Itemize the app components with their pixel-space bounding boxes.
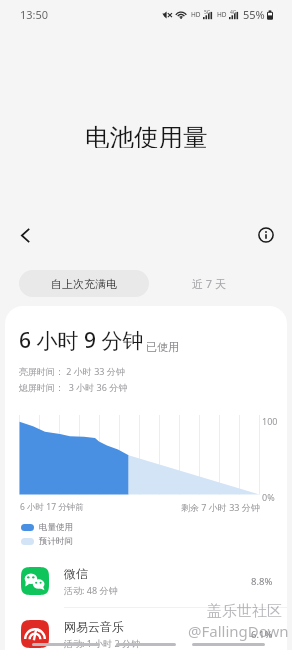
staticText: 自上次充满电 — [51, 277, 117, 291]
staticText: 8.8% — [251, 575, 273, 588]
staticText: 0% — [262, 491, 275, 503]
staticText: 盖乐世社区 — [207, 602, 282, 621]
staticText: 4G — [230, 9, 237, 16]
button[interactable]: 近 7 天 — [149, 270, 269, 297]
button[interactable]: 微信 — [5, 555, 287, 607]
button[interactable]: Back — [7, 217, 43, 253]
staticText: HD — [217, 10, 227, 19]
staticText: 已使用 — [146, 340, 179, 354]
staticText: 活动: 1 小时 2 分钟 — [64, 637, 141, 649]
staticText: @FallingDown — [188, 621, 289, 641]
button[interactable]: 网易云音乐 — [5, 608, 287, 650]
staticText: 5G — [204, 9, 211, 16]
staticText: 100 — [262, 415, 278, 427]
staticText: 活动: 48 分钟 — [64, 584, 118, 596]
staticText: 剩余 7 小时 33 分钟 — [181, 501, 260, 513]
staticText: 熄屏时间： 3 小时 36 分钟 — [19, 381, 128, 393]
staticText: 近 7 天 — [192, 276, 227, 291]
staticText: 13:50 — [20, 7, 49, 22]
staticText: 电量使用 — [39, 522, 73, 533]
button[interactable]: 自上次充满电 — [19, 270, 149, 297]
staticText: 预计时间 — [39, 536, 73, 547]
staticText: 55% — [243, 7, 265, 22]
staticText: 6.1% — [251, 628, 273, 641]
staticText: 亮屏时间： 2 小时 33 分钟 — [19, 365, 125, 377]
staticText: HD — [191, 10, 201, 19]
staticText: 微信 — [64, 566, 88, 581]
staticText: 6 小时 9 分钟 — [19, 326, 144, 355]
button[interactable]: Info — [248, 217, 284, 253]
staticText: 6 小时 17 分钟前 — [20, 501, 84, 513]
staticText: 网易云音乐 — [64, 619, 124, 634]
staticText: 电池使用量 — [85, 122, 208, 148]
